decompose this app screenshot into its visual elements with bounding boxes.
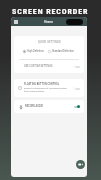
staticText: from floating button bbox=[24, 90, 45, 93]
button[interactable]: QUICK SETTINGS bbox=[14, 36, 84, 73]
staticText: Standard Definition bbox=[52, 50, 75, 53]
button[interactable] bbox=[73, 87, 80, 90]
staticText: RECORD AUDIO bbox=[25, 105, 44, 108]
button[interactable] bbox=[73, 65, 80, 68]
staticText: FLOATING BUTTON CONTROL bbox=[24, 83, 60, 86]
staticText: QUICK SETTINGS bbox=[38, 41, 61, 44]
staticText: Enable to stop/pause of recording system bbox=[24, 87, 67, 90]
button[interactable]: Record control bbox=[66, 19, 83, 25]
button[interactable]: FLOATING BUTTON CONTROL bbox=[14, 79, 84, 97]
staticText: USE CUSTOM SETTINGS bbox=[24, 65, 53, 68]
staticText: High Definition bbox=[27, 50, 44, 53]
staticText: Home bbox=[44, 20, 54, 24]
staticText: SCREEN RECORDER bbox=[12, 7, 89, 16]
button[interactable]: RECORD AUDIO bbox=[14, 100, 84, 113]
button[interactable]: Start recording bbox=[76, 160, 85, 169]
button[interactable] bbox=[73, 105, 80, 108]
